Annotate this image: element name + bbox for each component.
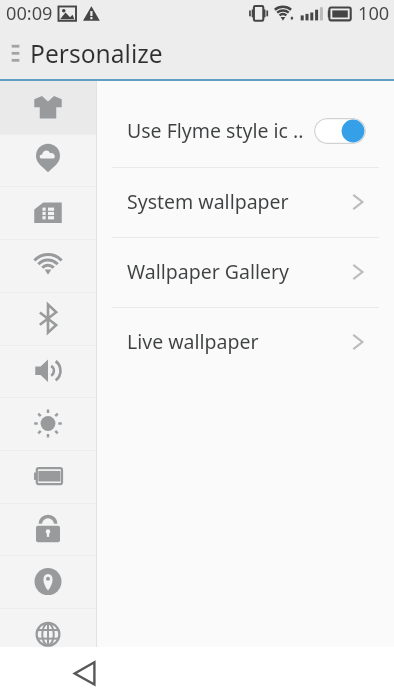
button[interactable]: Display (0, 397, 97, 450)
button[interactable]: Use Flyme style ic .. (97, 81, 394, 167)
button[interactable]: Weather (0, 134, 97, 187)
button[interactable]: SIM cards (0, 186, 97, 239)
staticText: 00:09 (6, 1, 53, 26)
button[interactable]: Location (0, 555, 97, 608)
staticText: Live wallpaper (127, 328, 259, 355)
staticText: Use Flyme style ic .. (127, 117, 304, 144)
button[interactable]: Personalize (0, 81, 97, 134)
button[interactable]: System wallpaper (97, 167, 394, 237)
staticText: Wallpaper Gallery (127, 258, 289, 285)
staticText: Personalize (30, 37, 163, 71)
button[interactable]: Bluetooth (0, 292, 97, 345)
button[interactable]: Security (0, 503, 97, 556)
button[interactable]: Back (64, 651, 108, 695)
button[interactable]: Wallpaper Gallery (97, 237, 394, 307)
staticText: 100 (358, 1, 390, 26)
staticText: System wallpaper (127, 188, 289, 215)
button[interactable]: Sound (0, 345, 97, 398)
button[interactable]: Language (0, 608, 97, 661)
button[interactable]: Battery (0, 450, 97, 503)
button[interactable]: Wi-Fi (0, 239, 97, 292)
button[interactable]: Live wallpaper (97, 307, 394, 377)
button[interactable]: Menu (4, 36, 28, 72)
